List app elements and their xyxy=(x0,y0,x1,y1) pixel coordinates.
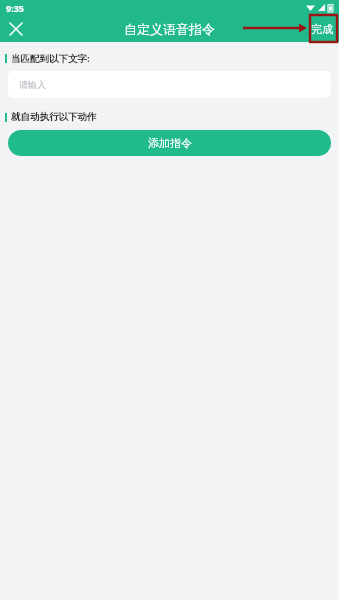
staticText: 当匹配到以下文字: xyxy=(11,52,90,65)
button[interactable]: 添加指令 xyxy=(8,130,331,156)
staticText: 请输入 xyxy=(19,79,46,90)
button[interactable]: Close xyxy=(0,15,32,42)
staticText: 添加指令 xyxy=(148,136,192,150)
staticText: 就自动执行以下动作 xyxy=(11,111,97,123)
staticText: 完成 xyxy=(311,22,333,36)
button[interactable]: 完成 xyxy=(311,22,333,36)
staticText: 9:35 xyxy=(6,2,24,14)
button[interactable]: 请输入 xyxy=(8,71,331,98)
staticText: 自定义语音指令 xyxy=(124,21,215,37)
